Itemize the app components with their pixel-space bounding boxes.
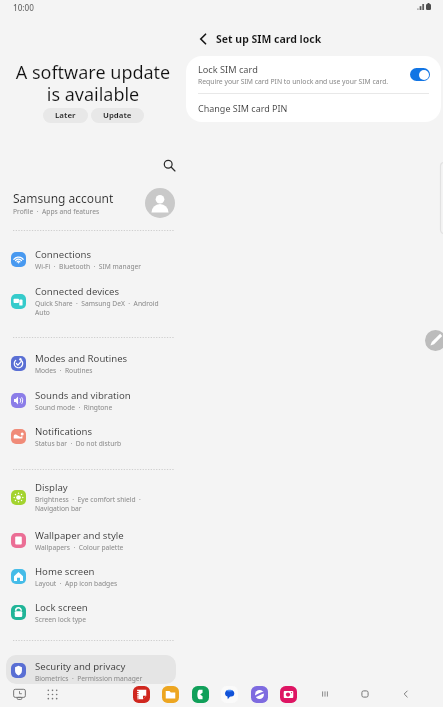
staticText: Samsung account [13,190,114,206]
button[interactable]: Home screen [6,563,176,594]
button[interactable]: Lock screen [6,599,176,630]
staticText: Change SIM card PIN [198,102,288,114]
button[interactable]: camera [280,686,297,703]
staticText: Wi-Fi · Bluetooth · SIM manager [35,262,142,271]
staticText: Biometrics · Permission manager [35,674,143,683]
button[interactable]: files [162,686,179,703]
button[interactable]: Notifications [6,423,176,454]
staticText: Modes and Routines [35,352,128,365]
staticText: Modes · Routines [35,366,93,375]
button[interactable]: Sounds and vibration [6,387,176,418]
staticText: Profile · Apps and features [13,207,100,216]
button[interactable]: Edge panel [425,330,443,351]
staticText: Sounds and vibration [35,389,131,402]
button[interactable]: Change SIM card PIN [186,94,441,122]
staticText: Quick Share · Samsung DeX · Android Auto [35,299,159,317]
staticText: Layout · App icon badges [35,579,118,588]
staticText: Screen lock type [35,615,86,624]
staticText: Notifications [35,425,93,438]
staticText: Brightness · Eye comfort shield · Naviga… [35,495,141,513]
button[interactable]: notes [133,686,150,703]
button[interactable]: Lock SIM card toggle [410,68,430,81]
button[interactable]: Display [6,479,176,519]
staticText: Home screen [35,565,95,578]
button[interactable]: phone [192,686,209,703]
button[interactable]: Home [356,685,374,703]
button[interactable]: Recents [11,686,27,702]
staticText: Update [103,110,132,121]
button[interactable]: Recent apps [316,685,334,703]
button[interactable]: Lock SIM card [186,56,441,93]
button[interactable]: Modes and Routines [6,350,176,381]
button[interactable]: msg [221,686,238,703]
button[interactable]: Samsung account [0,186,186,220]
staticText: Status bar · Do not disturb [35,439,122,448]
button[interactable]: Connections [6,246,176,277]
staticText: Later [55,110,76,121]
button[interactable]: Later [43,108,88,123]
staticText: 10:00 [13,2,34,13]
button[interactable]: Search [155,151,183,179]
staticText: Require your SIM card PIN to unlock and … [198,77,389,86]
staticText: A software update is available [0,60,186,107]
button[interactable]: Update [91,108,144,123]
staticText: Connections [35,248,92,261]
button[interactable]: Connected devices [6,283,176,323]
staticText: Lock screen [35,601,88,614]
button[interactable]: internet [251,686,268,703]
button[interactable]: Security and privacy [6,655,176,684]
staticText: Lock SIM card [198,63,258,76]
staticText: Sound mode · Ringtone [35,403,113,412]
button[interactable]: Back [397,685,415,703]
staticText: Wallpapers · Colour palette [35,543,124,552]
staticText: Wallpaper and style [35,529,124,542]
button[interactable]: Wallpaper and style [6,527,176,558]
staticText: Set up SIM card lock [216,32,322,46]
button[interactable]: Back [195,26,326,52]
staticText: Security and privacy [35,660,126,673]
staticText: Display [35,481,68,494]
button[interactable]: Apps [44,686,60,702]
staticText: Connected devices [35,285,120,298]
